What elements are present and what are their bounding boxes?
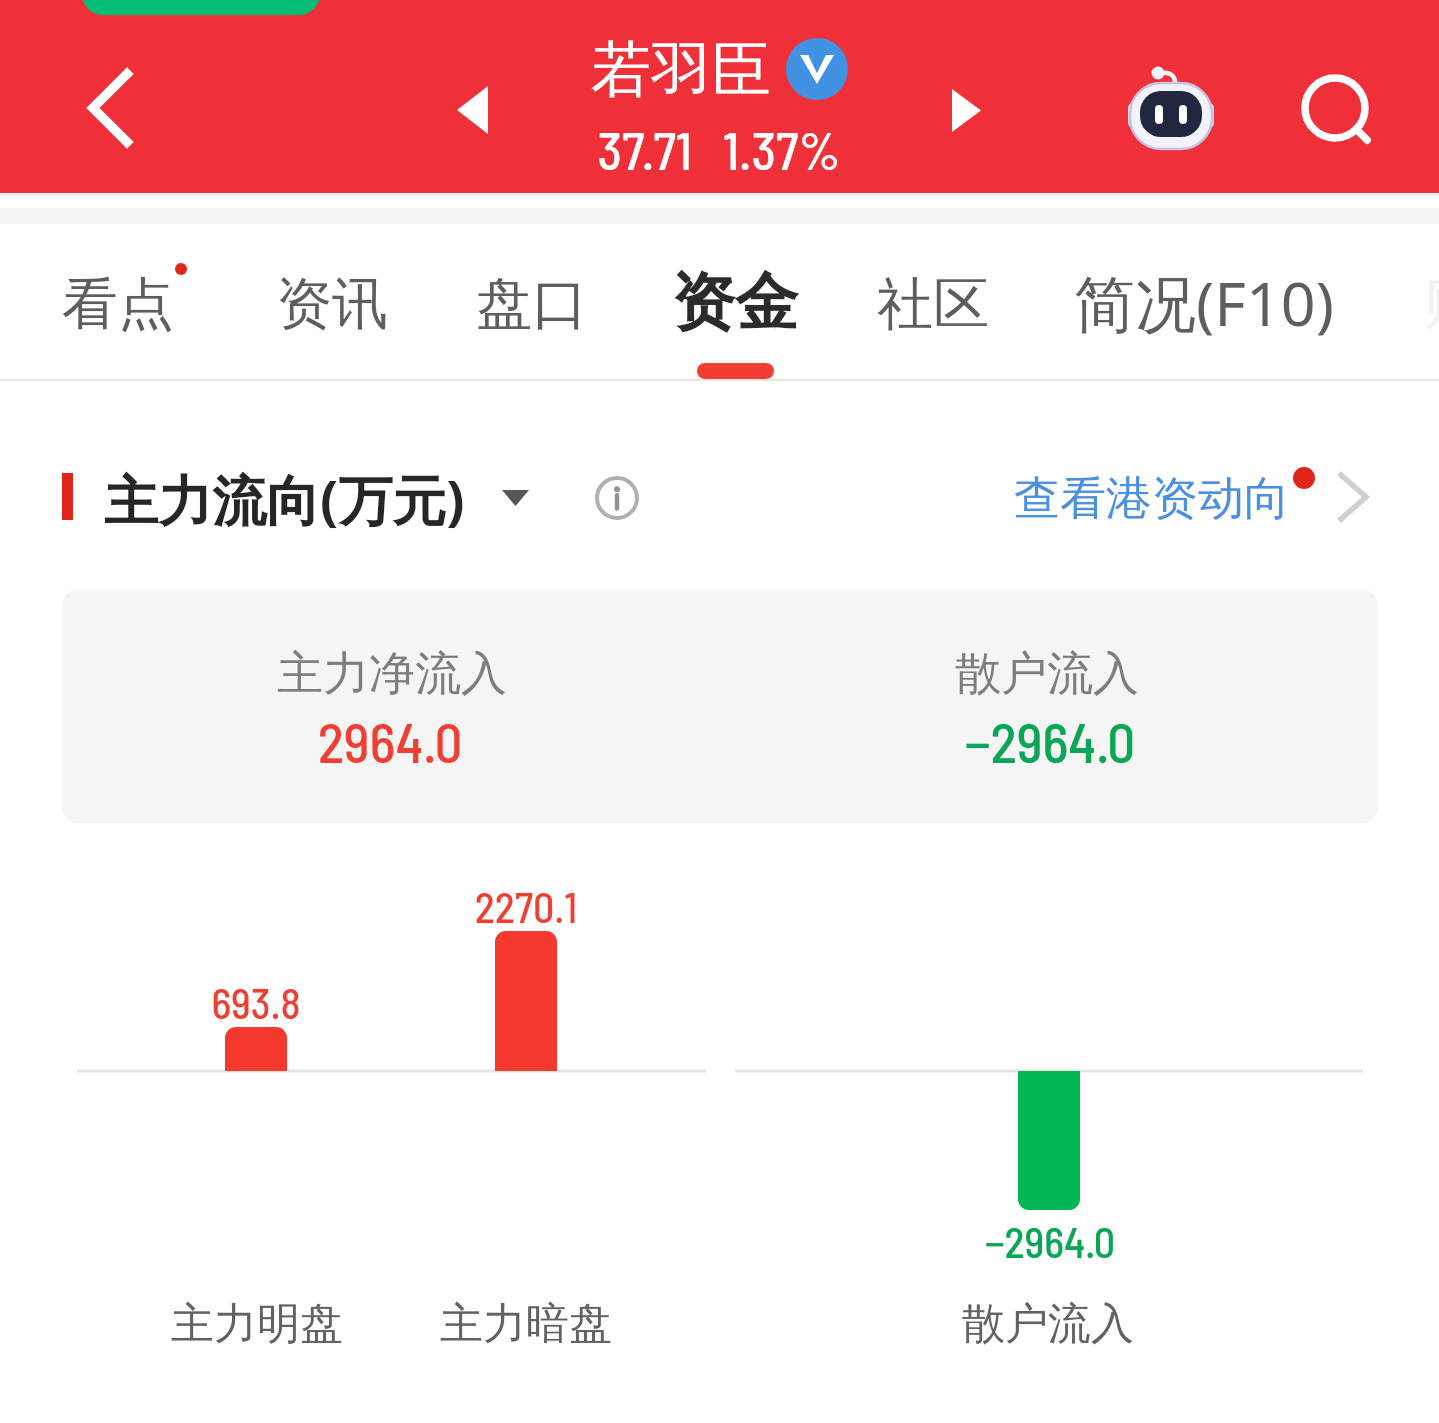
staticText: 资讯: [276, 269, 388, 340]
staticText: 2270.1: [326, 881, 726, 931]
staticText: 资金: [672, 263, 798, 342]
button[interactable]: 财: [1400, 224, 1439, 380]
button[interactable]: Search: [1285, 58, 1385, 158]
button[interactable]: Info: [577, 458, 657, 538]
staticText: 2964.0: [140, 708, 640, 774]
button[interactable]: 简况(F10): [1050, 224, 1360, 380]
button[interactable]: Next stock: [921, 65, 1011, 155]
staticText: 37.71 1.37%: [419, 118, 1019, 180]
button[interactable]: 主力流向(万元): [50, 455, 542, 545]
button[interactable]: 社区: [853, 224, 1011, 380]
staticText: 主力净流入: [142, 645, 642, 703]
button[interactable]: 看点: [38, 224, 196, 380]
staticText: 社区: [877, 269, 989, 340]
staticText: 散户流入: [848, 1297, 1248, 1351]
staticText: 主力暗盘: [326, 1297, 726, 1351]
button[interactable]: [62, 590, 1378, 823]
staticText: 简况(F10): [1074, 261, 1335, 344]
button[interactable]: AI assistant: [1125, 60, 1217, 152]
staticText: 看点: [62, 269, 174, 340]
staticText: 盘口: [476, 269, 588, 340]
staticText: 查看港资动向: [1014, 470, 1290, 528]
staticText: 若羽臣: [481, 32, 881, 108]
button[interactable]: Back: [60, 58, 160, 158]
staticText: 财: [1424, 269, 1439, 340]
staticText: −2964.0: [850, 1216, 1250, 1266]
button[interactable]: 盘口: [452, 224, 610, 380]
button[interactable]: 资金: [648, 224, 820, 380]
staticText: 主力流向(万元): [104, 462, 465, 536]
staticText: 主力明盘: [57, 1297, 457, 1351]
button[interactable]: 查看港资动向: [990, 452, 1382, 544]
button[interactable]: Previous stock: [427, 65, 517, 155]
staticText: 693.8: [56, 977, 456, 1027]
button[interactable]: 资讯: [252, 224, 410, 380]
staticText: 散户流入: [797, 645, 1297, 703]
staticText: −2964.0: [800, 708, 1300, 774]
